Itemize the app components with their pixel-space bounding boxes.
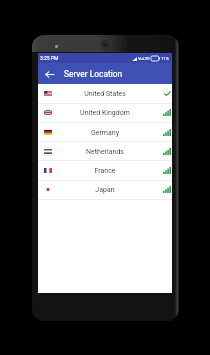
staticText: Japan <box>38 186 172 194</box>
button[interactable]: France <box>38 161 172 180</box>
button[interactable]: Back <box>40 65 58 83</box>
button[interactable]: Germany <box>38 123 172 142</box>
button[interactable]: Japan <box>38 180 172 199</box>
button[interactable]: Netherlands <box>38 142 172 161</box>
staticText: United States <box>38 90 172 98</box>
staticText: Netherlands <box>38 148 172 156</box>
staticText: France <box>38 167 172 175</box>
staticText: United Kingdom <box>38 109 172 117</box>
button[interactable]: United States <box>38 84 172 103</box>
staticText: Server Location <box>64 69 123 79</box>
staticText: 11% <box>161 56 169 61</box>
button[interactable]: United Kingdom <box>38 103 172 122</box>
staticText: 3:25 PM <box>40 55 59 61</box>
staticText: Germany <box>38 129 172 137</box>
staticText: VoLTE <box>138 56 150 61</box>
